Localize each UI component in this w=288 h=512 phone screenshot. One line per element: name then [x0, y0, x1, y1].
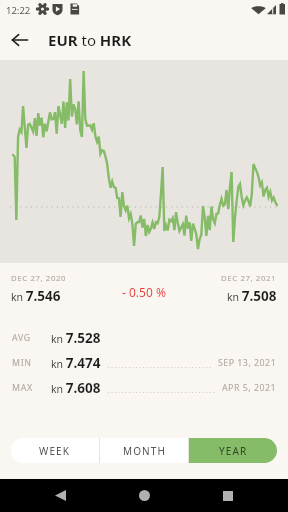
staticText: APR 5, 2021	[222, 382, 277, 394]
button[interactable]: Recents	[204, 479, 252, 512]
staticText: kn 7.508	[227, 287, 277, 305]
staticText: kn 7.546	[11, 287, 61, 305]
staticText: kn 7.528	[51, 329, 101, 347]
staticText: kn 7.608	[51, 379, 101, 397]
staticText: MIN	[12, 357, 32, 369]
staticText: MONTH	[123, 444, 166, 458]
staticText: MAX	[12, 382, 33, 394]
staticText: 12:22	[6, 4, 31, 17]
staticText: YEAR	[219, 444, 248, 458]
staticText: kn 7.474	[51, 354, 101, 372]
button[interactable]: Back	[36, 479, 84, 512]
staticText: DEC 27, 2021	[221, 273, 277, 284]
staticText: EUR to HRK	[48, 30, 132, 50]
staticText: - 0.50 %	[122, 284, 166, 300]
staticText: WEEK	[39, 444, 71, 458]
staticText: DEC 27, 2020	[11, 273, 67, 284]
staticText: SEP 13, 2021	[218, 357, 277, 369]
button[interactable]: Home	[120, 479, 168, 512]
button[interactable]: MONTH	[100, 438, 188, 463]
button[interactable]: Back	[0, 20, 40, 60]
button[interactable]: WEEK	[11, 438, 99, 463]
button[interactable]: YEAR	[189, 438, 277, 463]
staticText: AVG	[12, 332, 31, 344]
